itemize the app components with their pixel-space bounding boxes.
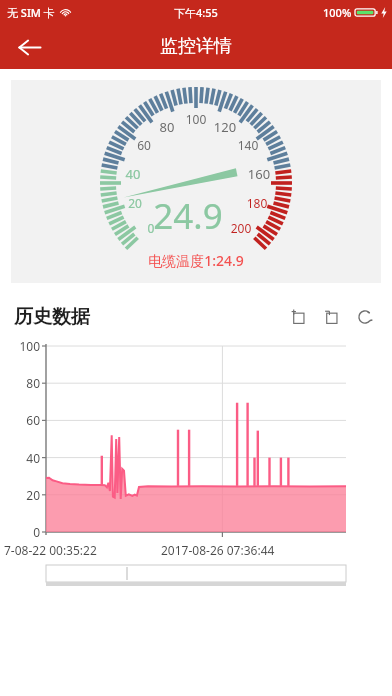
staticText: 无 SIM 卡 (7, 5, 55, 20)
staticText: 80 (153, 118, 181, 136)
staticText: 0 (137, 220, 165, 236)
staticText: 60 (0, 412, 40, 428)
button[interactable]: Back (8, 26, 50, 68)
staticText: 60 (130, 137, 158, 153)
staticText: 180 (243, 195, 271, 211)
staticText: 2017-08-26 07:36:44 (161, 542, 275, 558)
staticText: 历史数据 (14, 305, 90, 329)
staticText: 24.9 (3, 192, 373, 240)
staticText: 监控详情 (160, 35, 232, 58)
staticText: 0 (0, 524, 40, 540)
button[interactable]: 0 (11, 80, 381, 283)
staticText: 100 (0, 338, 40, 354)
staticText: 160 (245, 165, 273, 183)
staticText: 100 (182, 111, 210, 127)
staticText: 40 (119, 165, 147, 183)
staticText: 7-08-22 00:35:22 (4, 542, 97, 558)
staticText: 140 (234, 137, 262, 153)
staticText: 120 (211, 118, 239, 136)
staticText: 电缆温度1:24.9 (11, 251, 381, 270)
button[interactable]: Zoom out (319, 304, 345, 330)
button[interactable]: Refresh (352, 304, 378, 330)
staticText: 20 (121, 195, 149, 211)
staticText: 下午4:55 (174, 5, 218, 20)
staticText: 200 (227, 220, 255, 236)
staticText: 100% (323, 5, 352, 20)
staticText: 40 (0, 450, 40, 466)
staticText: 80 (0, 375, 40, 391)
staticText: 20 (0, 487, 40, 503)
button[interactable]: Zoom in (286, 304, 312, 330)
